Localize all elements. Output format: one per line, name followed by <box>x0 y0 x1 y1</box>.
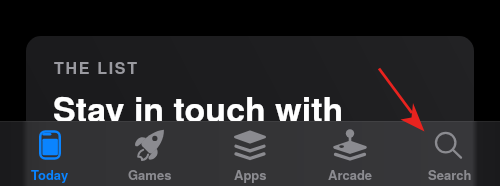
button[interactable]: Apps <box>200 121 300 186</box>
staticText: Apps <box>234 165 267 184</box>
staticText: Stay in touch with <box>53 84 344 133</box>
button[interactable]: Search <box>400 121 500 186</box>
button[interactable]: Games <box>100 121 200 186</box>
staticText: THE LIST <box>54 56 139 79</box>
button[interactable]: Arcade <box>300 121 400 186</box>
staticText: Games <box>128 165 172 184</box>
staticText: Search <box>428 165 472 184</box>
button[interactable]: THE LIST <box>26 36 474 186</box>
staticText: Arcade <box>328 165 373 184</box>
button[interactable]: Today <box>0 121 100 186</box>
staticText: Today <box>31 165 69 184</box>
